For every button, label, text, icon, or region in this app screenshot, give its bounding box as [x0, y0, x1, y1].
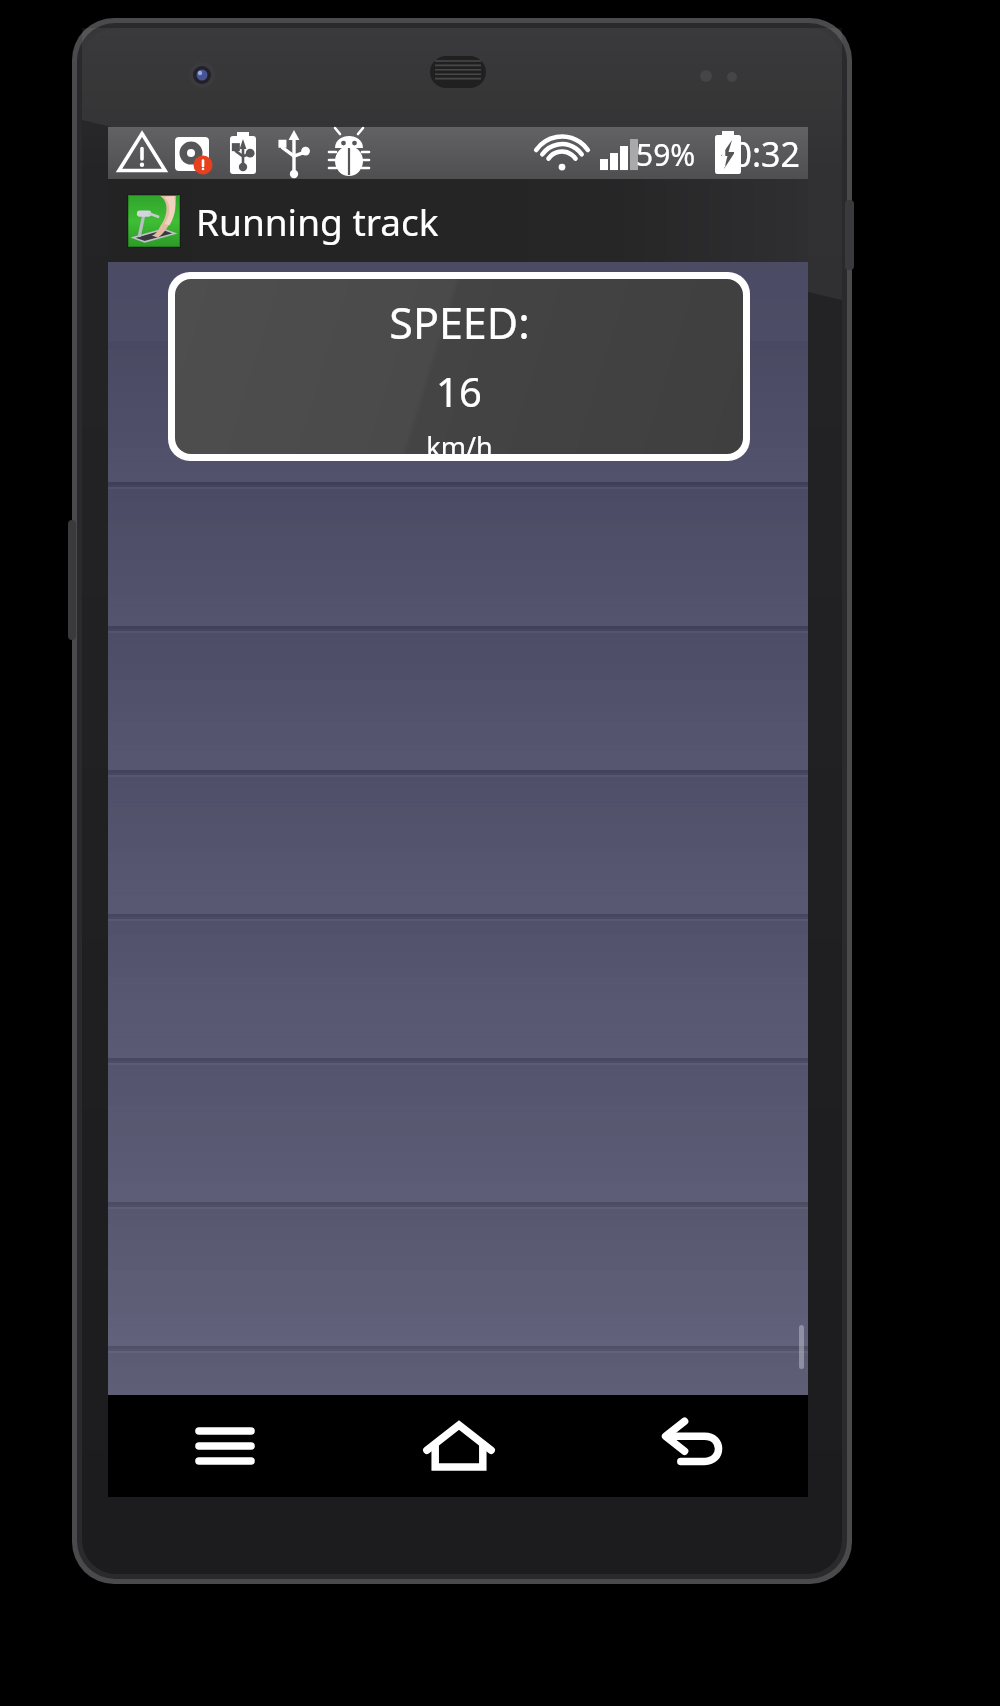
- staticText: Running track: [196, 196, 439, 246]
- staticText: 59%: [636, 134, 696, 175]
- staticText: SPEED:: [389, 293, 530, 352]
- staticText: 10:32: [713, 131, 800, 177]
- button[interactable]: Home: [342, 1395, 575, 1497]
- button[interactable]: SPEED:: [175, 279, 743, 454]
- button[interactable]: Back: [575, 1395, 808, 1497]
- button[interactable]: Recent apps: [108, 1395, 342, 1497]
- staticText: 16: [436, 364, 482, 418]
- staticText: km/h: [426, 428, 493, 454]
- button[interactable]: Running track: [108, 179, 808, 262]
